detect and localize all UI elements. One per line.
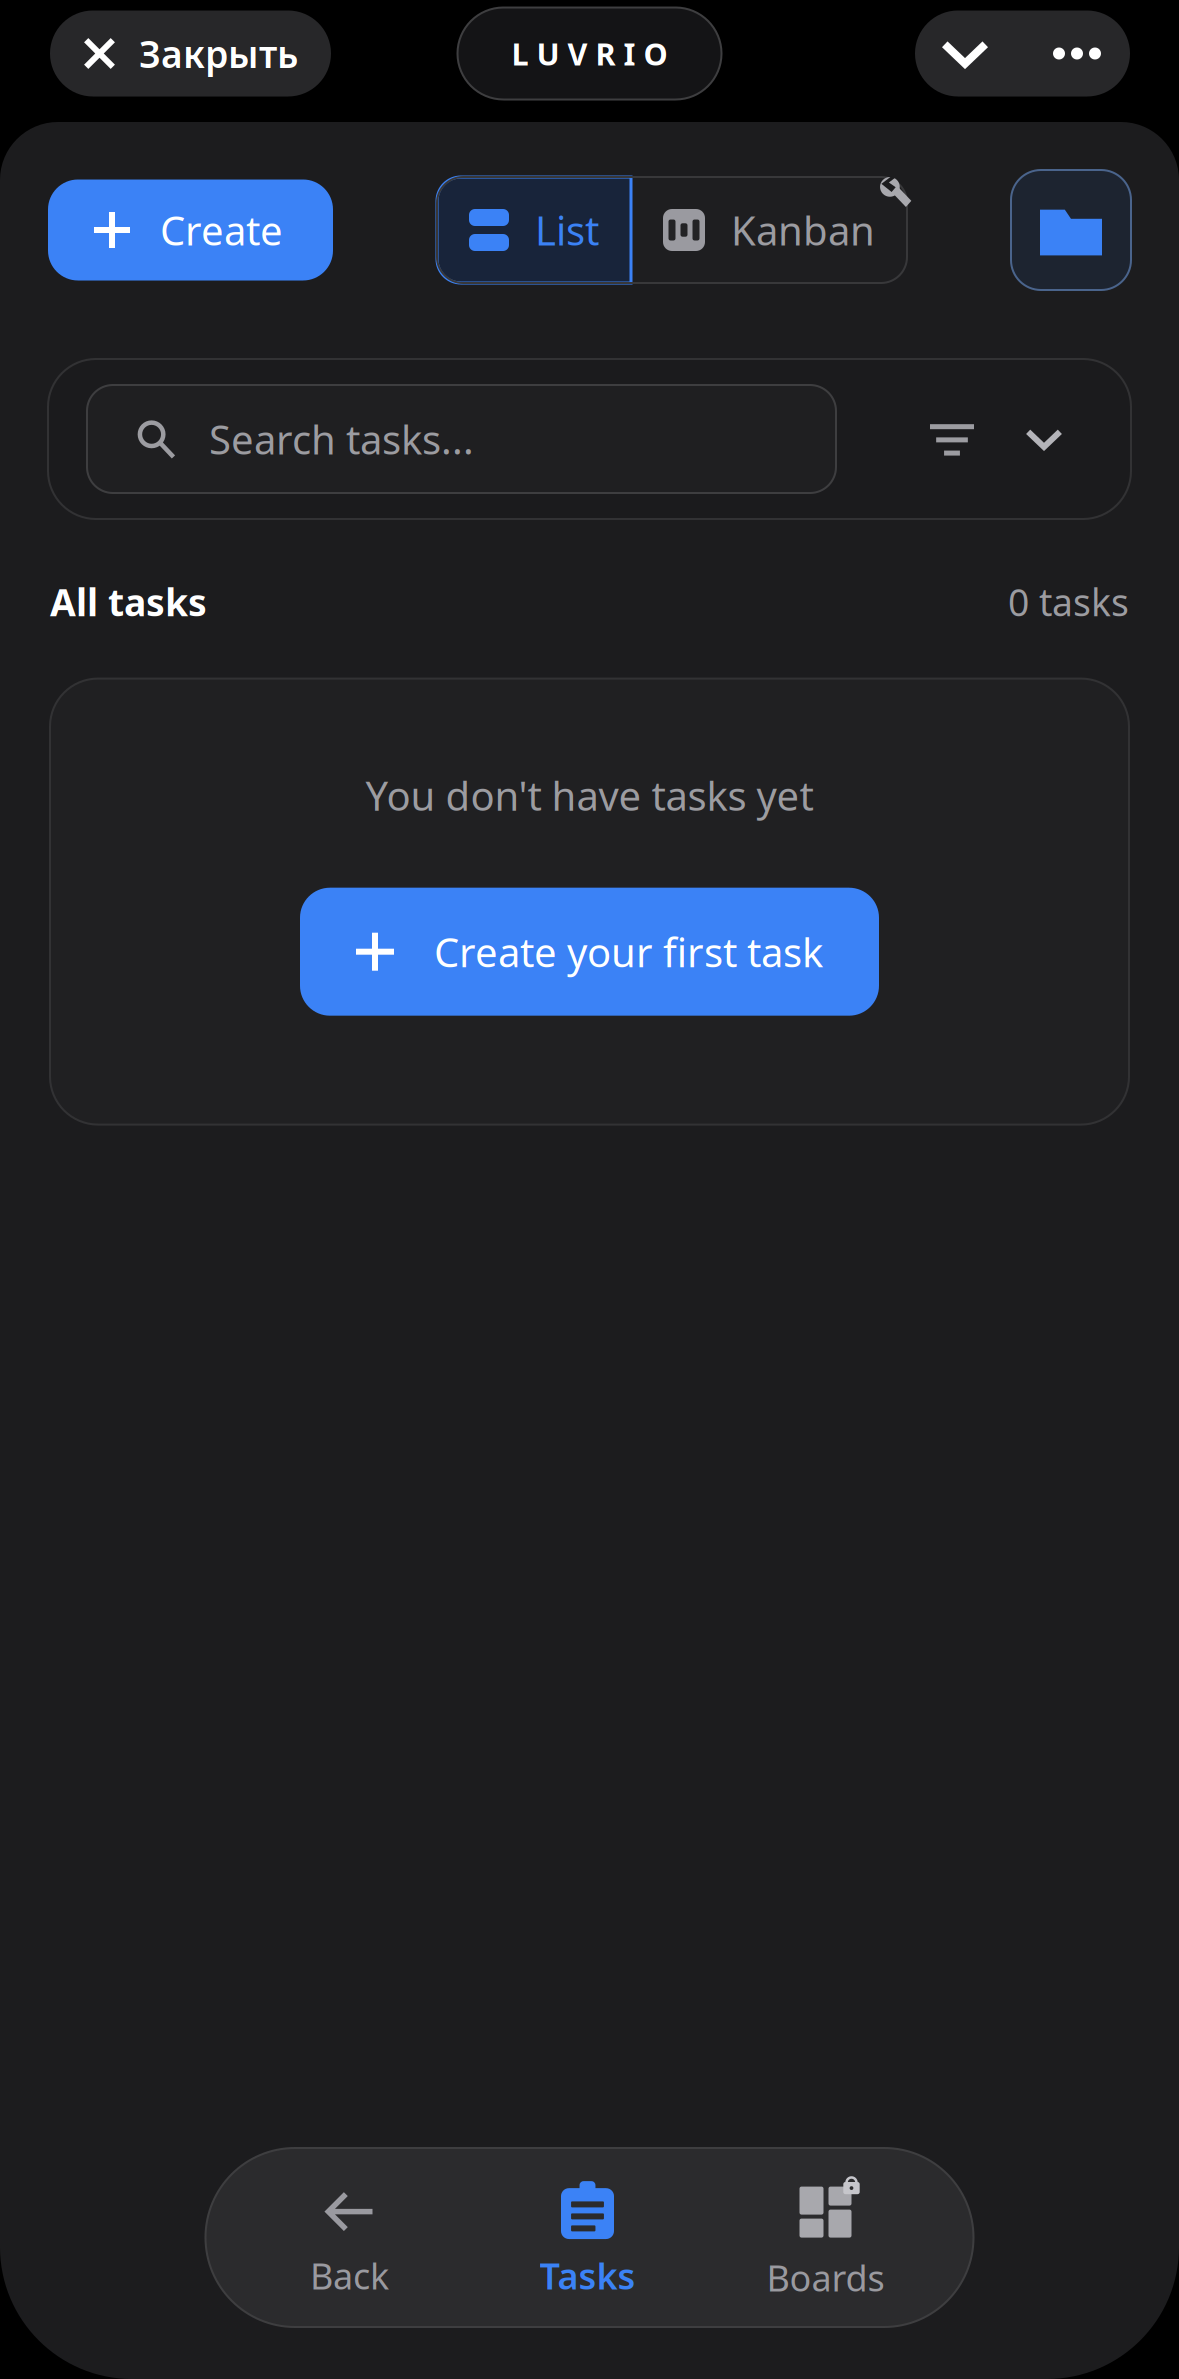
- button[interactable]: Folders: [1011, 170, 1131, 290]
- staticText: Tasks: [539, 2251, 635, 2299]
- staticText: Create your first task: [434, 925, 823, 978]
- button[interactable]: L U V R I O: [457, 7, 721, 99]
- button[interactable]: Collapse: [942, 30, 988, 76]
- button[interactable]: List: [437, 177, 631, 283]
- button[interactable]: Tasks: [468, 2176, 706, 2299]
- button[interactable]: Create: [48, 179, 333, 280]
- staticText: Boards: [766, 2254, 884, 2301]
- staticText: Back: [310, 2252, 389, 2299]
- staticText: L U V R I O: [511, 33, 667, 74]
- button[interactable]: Back: [230, 2176, 468, 2299]
- button[interactable]: Sort: [1026, 421, 1062, 457]
- button[interactable]: More: [1053, 47, 1101, 59]
- staticText: Search tasks...: [209, 412, 474, 465]
- button[interactable]: Filter: [930, 417, 974, 461]
- staticText: List: [535, 203, 599, 256]
- staticText: You don't have tasks yet: [365, 769, 813, 822]
- staticText: All tasks: [50, 577, 207, 627]
- button[interactable]: Закрыть: [50, 10, 331, 96]
- staticText: Закрыть: [139, 29, 298, 78]
- button[interactable]: Kanban: [631, 177, 907, 283]
- button[interactable]: Create your first task: [300, 888, 879, 1016]
- button[interactable]: Boards: [706, 2176, 944, 2299]
- staticText: Kanban: [731, 203, 875, 256]
- staticText: Create: [160, 203, 283, 256]
- staticText: 0 tasks: [1008, 577, 1129, 627]
